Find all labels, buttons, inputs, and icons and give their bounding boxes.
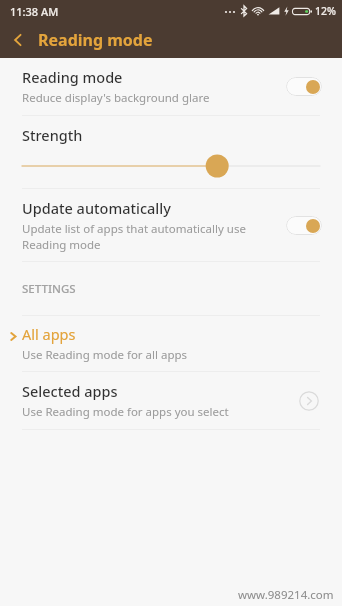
button[interactable]: Toggle xyxy=(286,216,322,235)
button[interactable]: Selected apps xyxy=(0,372,342,429)
button[interactable]: Back xyxy=(0,22,36,58)
button[interactable]: Strength xyxy=(0,116,342,188)
button[interactable]: All apps xyxy=(0,316,342,371)
staticText: Update list of apps that automatically u… xyxy=(22,221,246,237)
staticText: 11:38 AM xyxy=(10,4,59,19)
button[interactable]: Toggle xyxy=(286,77,322,96)
staticText: Update automatically xyxy=(22,198,171,218)
staticText: Reading mode xyxy=(22,67,123,87)
staticText: Use Reading mode for all apps xyxy=(22,347,188,363)
staticText: 12% xyxy=(315,4,336,18)
staticText: Reduce display's background glare xyxy=(22,90,210,106)
button[interactable]: Update automatically xyxy=(0,189,342,261)
staticText: SETTINGS xyxy=(22,281,76,297)
staticText: Strength xyxy=(22,125,83,145)
staticText: Selected apps xyxy=(22,381,118,401)
staticText: www.989214.com xyxy=(238,587,334,603)
staticText: Reading mode xyxy=(22,237,101,253)
button[interactable]: Reading mode xyxy=(0,58,342,115)
other: Open selected apps xyxy=(298,390,320,412)
staticText: All apps xyxy=(22,324,76,344)
staticText: Reading mode xyxy=(38,29,153,51)
staticText: Use Reading mode for apps you select xyxy=(22,404,229,420)
